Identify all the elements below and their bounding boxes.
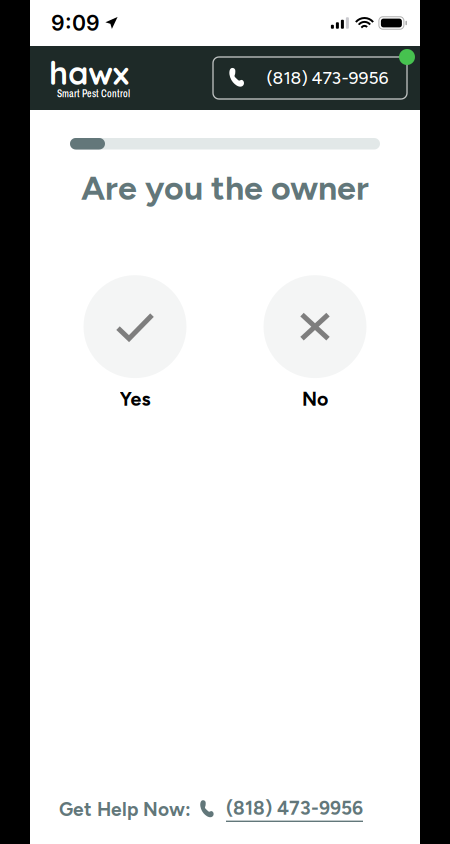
staticText: Are you the owner — [81, 167, 369, 208]
staticText: (818) 473-9956 — [266, 67, 388, 88]
button[interactable]: (818) 473-9956 — [213, 57, 407, 99]
staticText: Smart Pest Control — [57, 88, 130, 99]
button[interactable]: No — [263, 275, 366, 410]
staticText: Yes — [119, 387, 150, 410]
staticText: Get Help Now: — [59, 798, 191, 821]
button[interactable]: Yes — [83, 275, 186, 410]
staticText: 9:09 — [51, 10, 100, 36]
button[interactable]: Get Help Now: — [59, 797, 363, 822]
staticText: hawx — [49, 52, 129, 93]
staticText: (818) 473-9956 — [226, 797, 363, 820]
staticText: No — [302, 387, 328, 410]
